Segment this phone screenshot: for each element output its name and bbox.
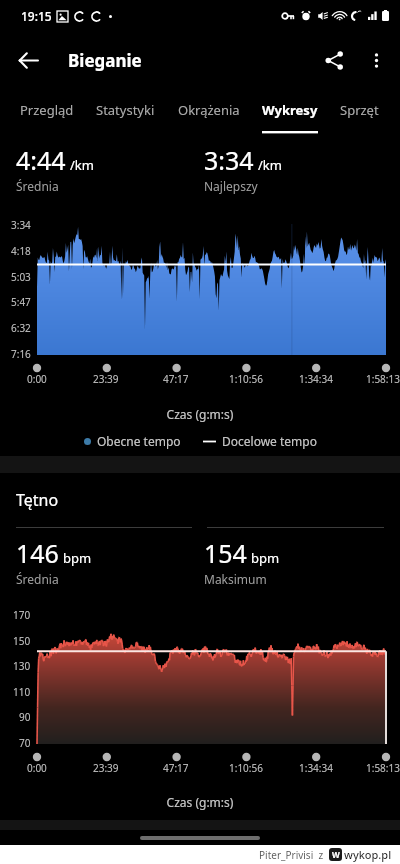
staticText: 47:17: [163, 372, 189, 386]
staticText: 130: [13, 659, 31, 673]
staticText: Statystyki: [96, 101, 155, 119]
staticText: 70: [19, 736, 31, 750]
staticText: Piter_Privisi z: [259, 848, 324, 862]
button[interactable]: Sprzęt: [338, 83, 381, 135]
staticText: 90: [19, 710, 31, 724]
staticText: 1:10:56: [229, 761, 263, 775]
staticText: Bieganie: [68, 49, 142, 72]
staticText: Maksimum: [204, 571, 267, 587]
staticText: Czas (g:m:s): [0, 794, 400, 810]
button[interactable]: Statystyki: [94, 83, 157, 135]
staticText: 0:00: [27, 761, 47, 775]
staticText: 154: [204, 536, 247, 570]
staticText: 1:34:34: [299, 372, 333, 386]
staticText: 23:39: [93, 372, 119, 386]
staticText: 1:58:13: [366, 761, 400, 775]
staticText: 3:34: [204, 143, 254, 177]
button[interactable]: Share: [312, 38, 356, 82]
staticText: 6:32: [11, 321, 31, 335]
staticText: 1:34:34: [299, 761, 333, 775]
staticText: wykop.pl: [344, 847, 392, 862]
staticText: 5:03: [11, 270, 31, 284]
staticText: 110: [13, 685, 31, 699]
staticText: /km: [70, 156, 94, 174]
staticText: 23:39: [93, 761, 119, 775]
staticText: Obecne tempo: [97, 433, 181, 449]
staticText: 47:17: [163, 761, 189, 775]
staticText: 170: [13, 608, 31, 622]
staticText: 0:00: [27, 372, 47, 386]
staticText: 5:47: [11, 295, 31, 309]
staticText: 1:10:56: [229, 372, 263, 386]
staticText: Sprzęt: [340, 101, 379, 119]
staticText: 150: [13, 634, 31, 648]
staticText: /km: [258, 156, 282, 174]
button[interactable]: Back: [6, 38, 50, 82]
staticText: 4:18: [11, 244, 31, 258]
staticText: Najlepszy: [204, 178, 258, 194]
staticText: Tętno: [16, 489, 59, 511]
staticText: Średnia: [16, 571, 59, 587]
staticText: 1:58:13: [366, 372, 400, 386]
staticText: 3:34: [11, 218, 31, 232]
staticText: Czas (g:m:s): [0, 406, 400, 422]
button[interactable]: Okrążenia: [176, 83, 242, 135]
staticText: bpm: [63, 549, 92, 567]
staticText: Okrążenia: [178, 101, 240, 119]
staticText: 146: [16, 536, 59, 570]
staticText: bpm: [251, 549, 280, 567]
staticText: 7:16: [11, 347, 31, 361]
button[interactable]: Przegląd: [18, 83, 76, 135]
staticText: Wykresy: [262, 101, 318, 119]
button[interactable]: Wykresy: [260, 83, 320, 135]
staticText: Przegląd: [20, 101, 74, 119]
staticText: 4:44: [16, 143, 66, 177]
staticText: W: [332, 849, 340, 860]
staticText: 19:15: [21, 8, 52, 24]
button[interactable]: More options: [356, 40, 396, 80]
staticText: Średnia: [16, 178, 59, 194]
staticText: Docelowe tempo: [222, 433, 317, 449]
